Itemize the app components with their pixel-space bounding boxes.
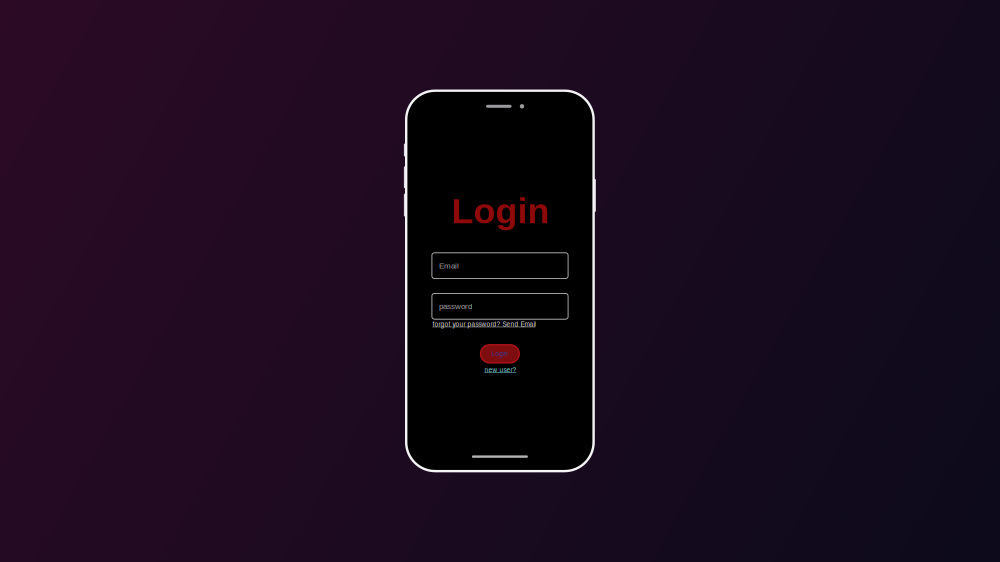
button[interactable]: Login bbox=[480, 345, 519, 363]
staticText: Email bbox=[439, 261, 459, 270]
staticText: password bbox=[439, 302, 472, 311]
staticText: forgot your password? Send Email bbox=[432, 321, 535, 328]
staticText: Login bbox=[491, 350, 508, 357]
button[interactable]: Email bbox=[432, 253, 568, 278]
button[interactable]: new user? bbox=[480, 366, 520, 374]
button[interactable]: forgot your password? Send Email bbox=[432, 320, 548, 328]
staticText: new user? bbox=[484, 366, 516, 373]
staticText: Login bbox=[451, 191, 549, 231]
button[interactable]: password bbox=[432, 293, 568, 319]
